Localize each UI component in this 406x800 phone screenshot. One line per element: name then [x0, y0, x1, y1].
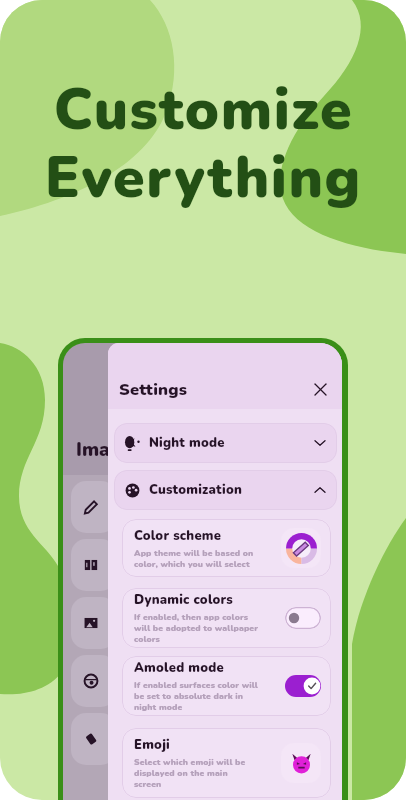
- button[interactable]: On: [285, 675, 321, 697]
- button[interactable]: Color scheme: [122, 519, 331, 577]
- button[interactable]: Text: [71, 539, 116, 591]
- staticText: Customization: [149, 481, 243, 499]
- staticText: App theme will be based on color, which …: [134, 547, 254, 570]
- staticText: Select which emoji will be displayed on …: [134, 756, 246, 790]
- staticText: Color scheme: [134, 527, 222, 545]
- button[interactable]: Emoji: [122, 728, 331, 798]
- staticText: Emoji: [134, 736, 170, 754]
- button[interactable]: Off: [285, 607, 321, 629]
- button[interactable]: Image: [71, 597, 116, 649]
- button[interactable]: Dynamic colors: [122, 588, 331, 648]
- button[interactable]: Close: [309, 378, 331, 400]
- button[interactable]: Draw: [71, 481, 116, 533]
- button[interactable]: Night mode: [114, 423, 337, 463]
- button[interactable]: Customization: [114, 470, 337, 510]
- staticText: Settings: [119, 378, 188, 401]
- staticText: Ima: [76, 437, 110, 463]
- staticText: If enabled, then app colors will be adop…: [134, 611, 259, 645]
- staticText: Dynamic colors: [134, 591, 234, 609]
- staticText: Night mode: [149, 434, 225, 452]
- button[interactable]: Eraser: [71, 713, 116, 765]
- button[interactable]: Filters: [71, 655, 116, 707]
- staticText: Amoled mode: [134, 659, 224, 677]
- button[interactable]: Amoled mode: [122, 656, 331, 716]
- staticText: If enabled surfaces color will be set to…: [134, 679, 258, 713]
- staticText: Customize Everything: [45, 71, 362, 217]
